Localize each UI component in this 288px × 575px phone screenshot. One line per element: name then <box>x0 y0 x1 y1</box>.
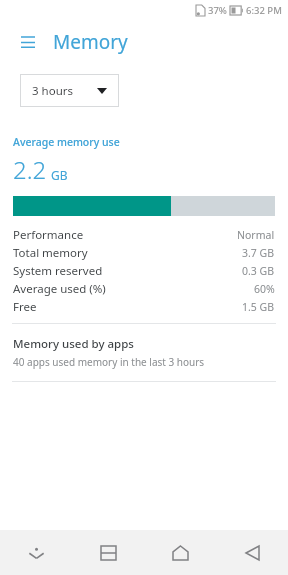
staticText: 60% <box>254 282 275 296</box>
button[interactable]: Open navigation menu <box>14 28 42 56</box>
button[interactable]: Back <box>216 530 288 575</box>
button[interactable]: Average used (%) <box>13 280 275 298</box>
staticText: Memory <box>53 29 128 55</box>
staticText: GB <box>51 167 68 183</box>
staticText: 3.7 GB <box>242 246 275 260</box>
staticText: 1.5 GB <box>242 300 275 314</box>
button[interactable]: System reserved <box>13 262 275 280</box>
button[interactable]: Home <box>144 530 216 575</box>
staticText: 6:32 PM <box>246 4 282 17</box>
staticText: Normal <box>237 228 275 242</box>
button[interactable]: Memory used by apps <box>0 324 288 381</box>
staticText: Average used (%) <box>13 281 106 297</box>
staticText: 3 hours <box>32 83 73 99</box>
staticText: Total memory <box>13 245 88 261</box>
staticText: 0.3 GB <box>242 264 275 278</box>
staticText: 37% <box>208 4 227 17</box>
button[interactable]: Free <box>13 298 275 316</box>
staticText: Performance <box>13 227 84 243</box>
staticText: Average memory use <box>13 135 120 149</box>
staticText: Free <box>13 299 37 315</box>
button[interactable]: 3 hours <box>20 74 119 107</box>
staticText: Memory used by apps <box>13 336 134 352</box>
button[interactable]: Performance <box>13 226 275 244</box>
button[interactable]: Split screen <box>72 530 144 575</box>
staticText: 40 apps used memory in the last 3 hours <box>13 355 205 369</box>
staticText: 2.2 <box>13 153 47 186</box>
button[interactable]: Hide keyboard <box>0 530 72 575</box>
button[interactable]: Total memory <box>13 244 275 262</box>
staticText: System reserved <box>13 263 103 279</box>
